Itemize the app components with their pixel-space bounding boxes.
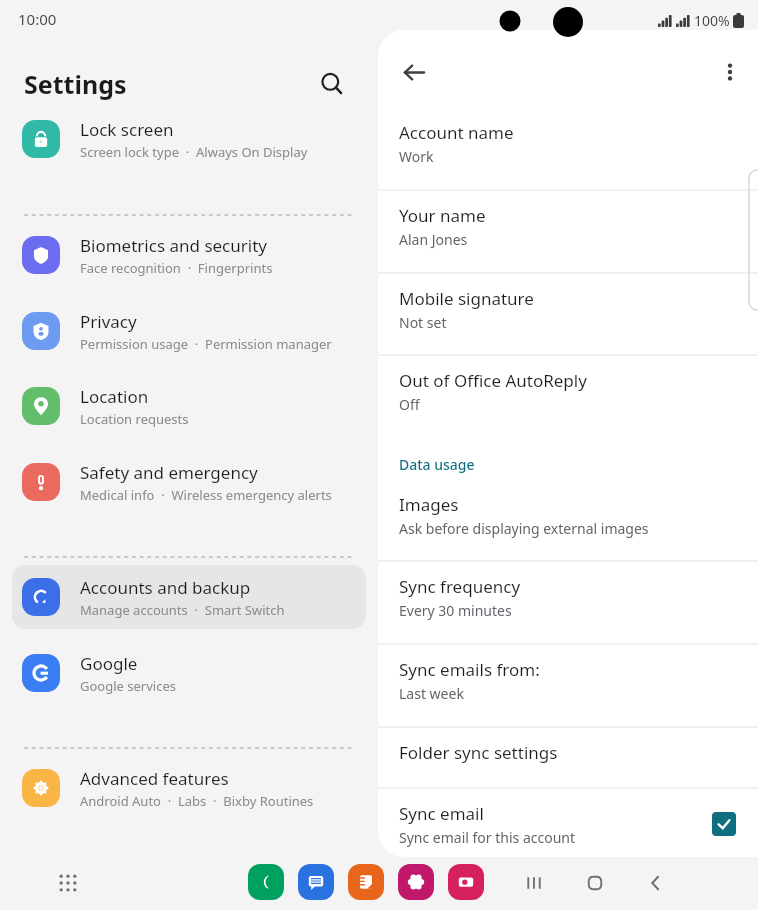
- button[interactable]: Sync frequency: [378, 563, 758, 633]
- staticText: Sync emails from:: [399, 658, 540, 681]
- button[interactable]: Mobile signature: [378, 275, 758, 345]
- staticText: Google: [80, 652, 138, 675]
- staticText: Last week: [399, 684, 464, 703]
- button[interactable]: Images: [378, 481, 758, 551]
- button[interactable]: notes: [348, 864, 384, 900]
- button[interactable]: Folder sync settings: [378, 729, 758, 785]
- button[interactable]: Out of Office AutoReply: [378, 357, 758, 427]
- button[interactable]: camera: [448, 864, 484, 900]
- staticText: Mobile signature: [399, 287, 534, 310]
- staticText: Settings: [24, 67, 312, 101]
- button[interactable]: All apps: [48, 863, 88, 903]
- staticText: Manage accounts · Smart Switch: [80, 601, 285, 619]
- staticText: Data usage: [399, 455, 475, 474]
- staticText: Folder sync settings: [399, 741, 558, 764]
- staticText: Google services: [80, 677, 176, 695]
- button[interactable]: Back: [392, 50, 436, 94]
- button[interactable]: Lock screen: [0, 107, 378, 171]
- button[interactable]: More options: [708, 50, 752, 94]
- button[interactable]: Recents: [513, 862, 555, 904]
- staticText: 10:00: [18, 9, 57, 29]
- staticText: Advanced features: [80, 767, 229, 790]
- button[interactable]: Location: [0, 374, 378, 438]
- button[interactable]: Google: [0, 641, 378, 705]
- button[interactable]: Your name: [378, 192, 758, 262]
- staticText: Images: [399, 493, 459, 516]
- button[interactable]: Sync emails from:: [378, 646, 758, 716]
- staticText: Lock screen: [80, 118, 174, 141]
- staticText: Accounts and backup: [80, 576, 251, 599]
- staticText: Permission usage · Permission manager: [80, 335, 332, 353]
- button[interactable]: flower: [398, 864, 434, 900]
- staticText: Medical info · Wireless emergency alerts: [80, 486, 332, 504]
- staticText: Work: [399, 147, 434, 166]
- button[interactable]: Advanced features: [0, 756, 378, 820]
- button[interactable]: Privacy: [0, 299, 378, 363]
- staticText: Location requests: [80, 410, 189, 428]
- button[interactable]: phone: [248, 864, 284, 900]
- button[interactable]: Sync email: [378, 790, 758, 857]
- staticText: Every 30 minutes: [399, 601, 512, 620]
- staticText: Ask before displaying external images: [399, 519, 649, 538]
- staticText: Screen lock type · Always On Display: [80, 143, 308, 161]
- staticText: Alan Jones: [399, 230, 468, 249]
- staticText: Location: [80, 385, 149, 408]
- staticText: Safety and emergency: [80, 461, 258, 484]
- staticText: Account name: [399, 121, 514, 144]
- button[interactable]: Sync email enabled: [712, 812, 736, 836]
- staticText: Face recognition · Fingerprints: [80, 259, 273, 277]
- staticText: Your name: [399, 204, 486, 227]
- button[interactable]: messages: [298, 864, 334, 900]
- staticText: Biometrics and security: [80, 234, 267, 257]
- button[interactable]: Back: [635, 862, 677, 904]
- staticText: Sync email for this account: [399, 828, 576, 847]
- staticText: 100%: [694, 11, 730, 30]
- staticText: Out of Office AutoReply: [399, 369, 587, 392]
- button[interactable]: Biometrics and security: [0, 223, 378, 287]
- staticText: Off: [399, 395, 420, 414]
- staticText: Privacy: [80, 310, 137, 333]
- button[interactable]: Accounts and backup: [12, 565, 366, 629]
- staticText: Sync email: [399, 802, 484, 825]
- staticText: Not set: [399, 313, 447, 332]
- button[interactable]: Safety and emergency: [0, 450, 378, 514]
- staticText: Sync frequency: [399, 575, 521, 598]
- button[interactable]: Home: [574, 862, 616, 904]
- button[interactable]: Search: [312, 64, 352, 104]
- staticText: Android Auto · Labs · Bixby Routines: [80, 792, 314, 810]
- button[interactable]: Account name: [378, 109, 758, 179]
